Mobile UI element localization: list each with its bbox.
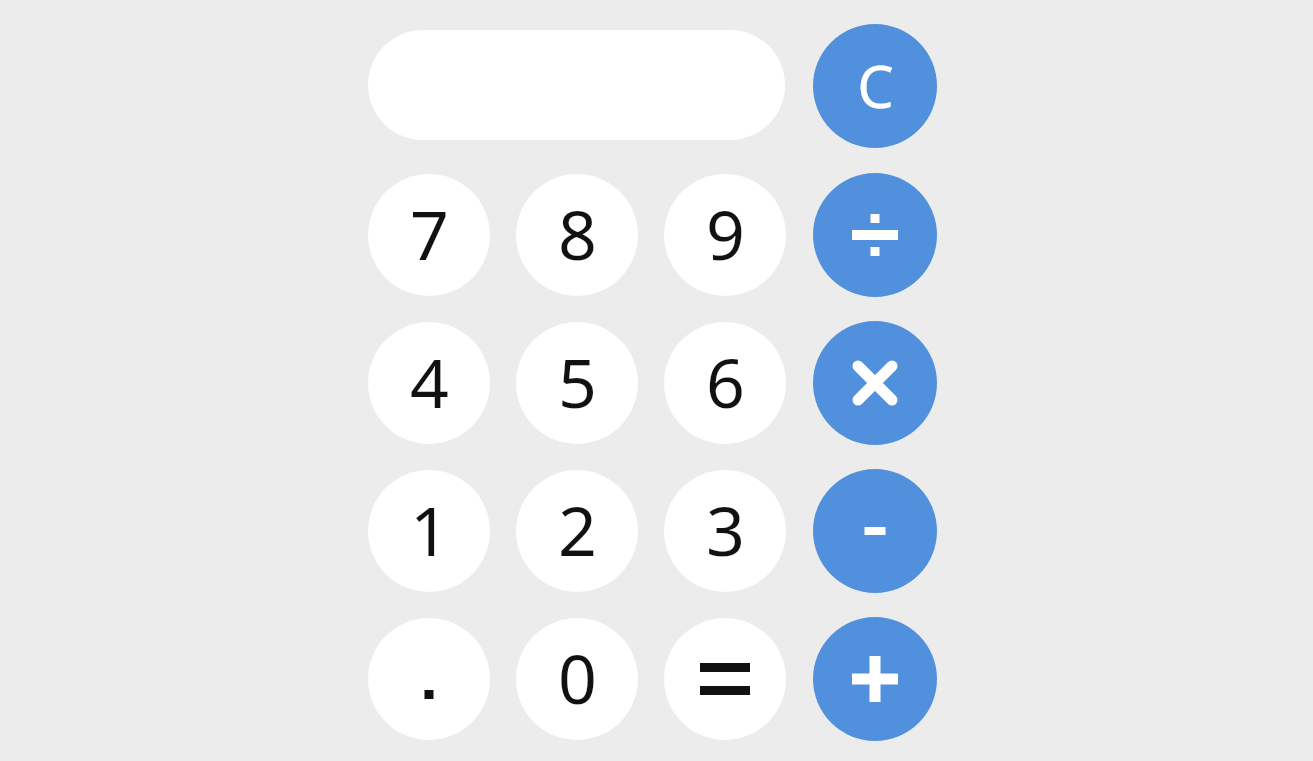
button[interactable]: Equals bbox=[664, 618, 786, 740]
button[interactable]: 2 bbox=[516, 470, 638, 592]
button[interactable]: 6 bbox=[664, 322, 786, 444]
button[interactable]: 7 bbox=[368, 174, 490, 296]
button[interactable]: 9 bbox=[664, 174, 786, 296]
staticText: 9 bbox=[706, 187, 745, 280]
button[interactable]: 5 bbox=[516, 322, 638, 444]
staticText: C bbox=[857, 46, 894, 125]
button[interactable]: Divide bbox=[813, 173, 937, 297]
button[interactable]: Multiply bbox=[813, 321, 937, 445]
staticText: 4 bbox=[410, 335, 449, 428]
button[interactable]: 1 bbox=[368, 470, 490, 592]
staticText: 5 bbox=[558, 335, 597, 428]
button[interactable]: Display bbox=[368, 30, 785, 140]
staticText: 6 bbox=[706, 335, 745, 428]
staticText: 8 bbox=[558, 187, 597, 280]
button[interactable]: Add bbox=[813, 617, 937, 741]
staticText: 0 bbox=[558, 631, 597, 724]
button[interactable]: 4 bbox=[368, 322, 490, 444]
button[interactable]: 8 bbox=[516, 174, 638, 296]
button[interactable]: 0 bbox=[516, 618, 638, 740]
button[interactable]: Decimal point bbox=[368, 618, 490, 740]
button[interactable]: Subtract bbox=[813, 469, 937, 593]
staticText: 3 bbox=[706, 483, 745, 576]
button[interactable]: C bbox=[813, 24, 937, 148]
staticText: 2 bbox=[558, 483, 597, 576]
staticText: 7 bbox=[410, 187, 449, 280]
button[interactable]: 3 bbox=[664, 470, 786, 592]
staticText: 1 bbox=[410, 483, 449, 576]
